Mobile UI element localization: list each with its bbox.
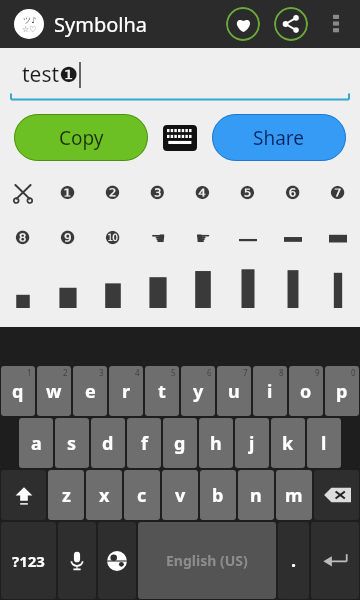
button[interactable]: ❸ xyxy=(135,170,180,215)
button[interactable]: u xyxy=(216,365,252,417)
staticText: j xyxy=(249,431,255,456)
button[interactable]: n xyxy=(237,469,275,521)
staticText: ❷ xyxy=(104,182,121,203)
button[interactable]: Keyboard xyxy=(163,125,197,151)
button[interactable]: a xyxy=(18,417,54,469)
button[interactable]: p xyxy=(324,365,360,417)
button[interactable]: ❹ xyxy=(180,170,225,215)
button[interactable]: l xyxy=(306,417,342,469)
button[interactable]: Share xyxy=(274,7,308,41)
staticText: ☛ xyxy=(195,228,211,248)
button[interactable]: ❶ xyxy=(45,170,90,215)
button[interactable]: Share xyxy=(212,114,346,161)
button[interactable] xyxy=(0,170,45,215)
button[interactable]: s xyxy=(54,417,90,469)
staticText: ❹ xyxy=(194,182,211,203)
staticText: ❽ xyxy=(14,227,31,248)
staticText: 7 xyxy=(243,367,248,378)
button[interactable]: ❾ xyxy=(45,215,90,260)
button[interactable]: ☚ xyxy=(135,215,180,260)
button[interactable] xyxy=(315,260,360,312)
button[interactable]: z xyxy=(47,469,85,521)
button[interactable] xyxy=(270,260,315,312)
staticText: c xyxy=(137,483,147,508)
staticText: 1 xyxy=(27,367,32,378)
button[interactable]: h xyxy=(198,417,234,469)
button[interactable]: w xyxy=(36,365,72,417)
button[interactable]: ❿ xyxy=(90,215,135,260)
button[interactable]: b xyxy=(199,469,237,521)
button[interactable]: g xyxy=(162,417,198,469)
staticText: a xyxy=(31,431,42,456)
staticText: m xyxy=(285,483,303,508)
staticText: ❼ xyxy=(329,182,346,203)
button[interactable]: v xyxy=(161,469,199,521)
button[interactable]: c xyxy=(123,469,161,521)
button[interactable] xyxy=(0,260,45,312)
button[interactable]: ☛ xyxy=(180,215,225,260)
button[interactable]: i xyxy=(252,365,288,417)
button[interactable]: ❽ xyxy=(0,215,45,260)
staticText: z xyxy=(62,483,71,508)
button[interactable] xyxy=(45,260,90,312)
button[interactable]: . xyxy=(277,521,310,600)
button[interactable]: o xyxy=(288,365,324,417)
button[interactable]: ツ♪ xyxy=(14,9,44,39)
staticText: h xyxy=(210,431,222,456)
button[interactable]: k xyxy=(270,417,306,469)
button[interactable]: Favorite xyxy=(226,7,260,41)
staticText: ☆♡ xyxy=(22,25,37,34)
button[interactable]: Shift xyxy=(0,469,47,521)
button[interactable] xyxy=(270,215,315,260)
button[interactable]: x xyxy=(85,469,123,521)
staticText: b xyxy=(212,483,224,508)
button[interactable]: t xyxy=(144,365,180,417)
button[interactable]: Voice input xyxy=(57,521,97,600)
button[interactable]: ❻ xyxy=(270,170,315,215)
button[interactable]: f xyxy=(126,417,162,469)
button[interactable]: j xyxy=(234,417,270,469)
button[interactable]: ❷ xyxy=(90,170,135,215)
staticText: y xyxy=(193,379,204,404)
staticText: Share xyxy=(253,125,305,151)
staticText: w xyxy=(46,379,62,404)
staticText: u xyxy=(228,379,240,404)
staticText: f xyxy=(141,431,148,456)
button[interactable]: Backspace xyxy=(313,469,360,521)
staticText: ❾ xyxy=(59,227,76,248)
button[interactable] xyxy=(90,260,135,312)
staticText: t xyxy=(158,379,166,404)
button[interactable]: r xyxy=(108,365,144,417)
staticText: ツ♪ xyxy=(23,15,37,25)
staticText: Symbolha xyxy=(54,11,148,38)
button[interactable]: e xyxy=(72,365,108,417)
button[interactable]: y xyxy=(180,365,216,417)
button[interactable] xyxy=(225,260,270,312)
button[interactable]: m xyxy=(275,469,313,521)
button[interactable]: ?123 xyxy=(0,521,57,600)
button[interactable] xyxy=(225,215,270,260)
button[interactable]: q xyxy=(0,365,36,417)
staticText: x xyxy=(99,483,110,508)
button[interactable]: Copy xyxy=(14,114,148,161)
staticText: 2 xyxy=(63,367,68,378)
staticText: l xyxy=(321,431,327,456)
button[interactable] xyxy=(315,215,360,260)
staticText: ?123 xyxy=(12,551,45,571)
staticText: 6 xyxy=(207,367,212,378)
button[interactable]: ❼ xyxy=(315,170,360,215)
button[interactable] xyxy=(180,260,225,312)
staticText: 9 xyxy=(315,367,320,378)
button[interactable]: ❺ xyxy=(225,170,270,215)
button[interactable]: More options xyxy=(320,8,352,40)
button[interactable]: Change language xyxy=(97,521,137,600)
button[interactable] xyxy=(135,260,180,312)
button[interactable]: Enter xyxy=(310,521,360,600)
staticText: r xyxy=(122,379,131,404)
button[interactable]: English (US) xyxy=(137,521,277,600)
staticText: s xyxy=(67,431,77,456)
staticText: v xyxy=(175,483,186,508)
button[interactable]: d xyxy=(90,417,126,469)
staticText: i xyxy=(267,379,273,404)
staticText: 0 xyxy=(351,367,356,378)
